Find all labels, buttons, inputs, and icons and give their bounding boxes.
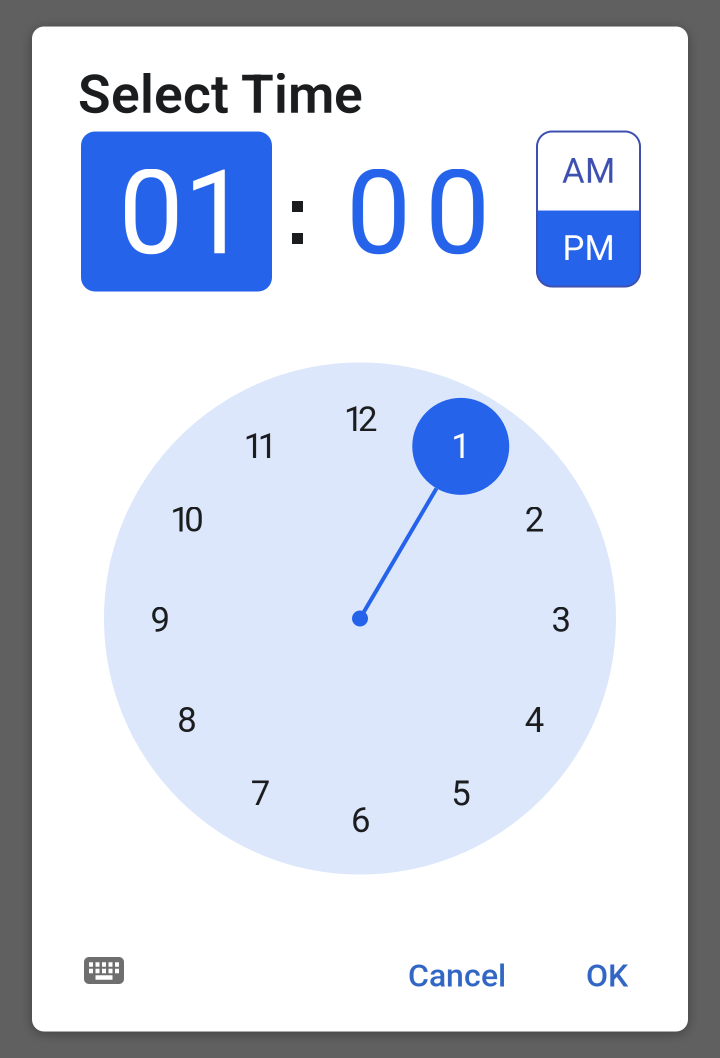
staticText: 1 — [451, 426, 470, 467]
staticText: 12 — [344, 399, 377, 440]
staticText: PM — [562, 228, 614, 269]
button[interactable]: Cancel — [408, 957, 506, 994]
staticText: 9 — [150, 600, 169, 640]
staticText: 3 — [551, 600, 570, 640]
staticText: 7 — [251, 773, 270, 814]
staticText: AM — [562, 151, 615, 191]
staticText: 8 — [177, 700, 196, 740]
button[interactable]: 01 — [81, 131, 272, 291]
button[interactable]: Switch to text input — [84, 957, 124, 984]
staticText: 10 — [170, 499, 203, 540]
staticText: 5 — [451, 773, 470, 814]
button[interactable]: AM — [537, 131, 640, 286]
staticText: 2 — [525, 499, 544, 540]
staticText: 6 — [351, 800, 370, 841]
button[interactable]: 00 — [322, 133, 513, 293]
button[interactable]: OK — [586, 957, 628, 994]
staticText: OK — [586, 957, 628, 994]
staticText: Cancel — [408, 957, 506, 994]
staticText: 00 — [346, 145, 490, 281]
staticText: Select Time — [78, 63, 363, 126]
staticText: 4 — [525, 700, 544, 740]
staticText: 11 — [244, 426, 277, 467]
staticText: 01 — [118, 145, 248, 281]
